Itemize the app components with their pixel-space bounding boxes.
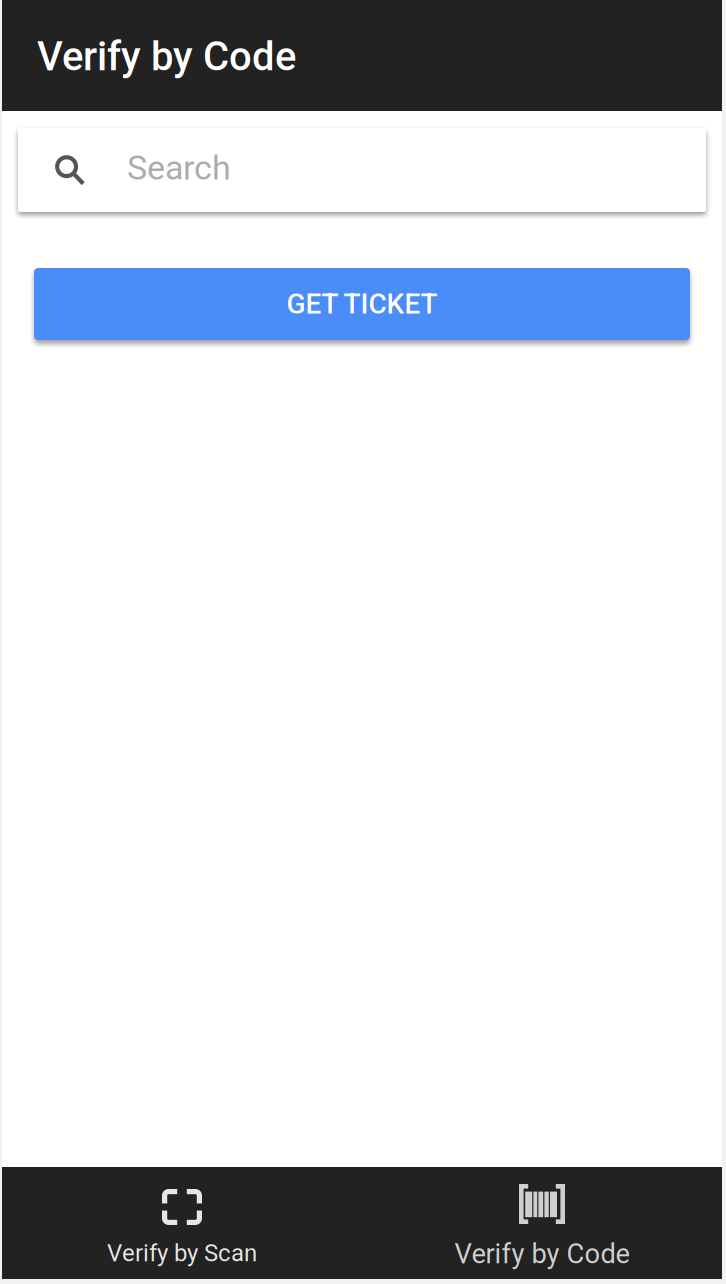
button[interactable]: Verify by Scan	[2, 1167, 362, 1279]
button[interactable]: Verify by Code	[362, 1167, 722, 1279]
staticText: Search	[127, 148, 231, 188]
staticText: GET TICKET	[286, 288, 437, 320]
staticText: Verify by Code	[37, 33, 296, 80]
button[interactable]: Search	[18, 128, 706, 212]
button[interactable]: GET TICKET	[34, 268, 690, 340]
staticText: Verify by Scan	[107, 1239, 257, 1267]
staticText: Verify by Code	[454, 1238, 629, 1270]
